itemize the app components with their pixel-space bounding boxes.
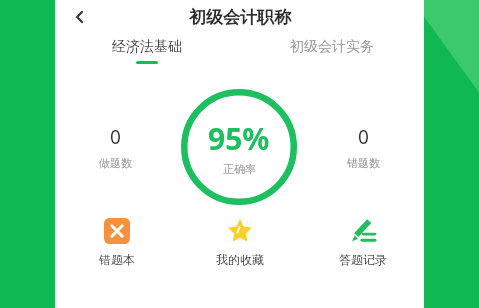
staticText: 答题记录 bbox=[339, 252, 387, 267]
button[interactable]: 初级会计实务 bbox=[239, 38, 424, 72]
staticText: 经济法基础 bbox=[112, 38, 182, 56]
staticText: 我的收藏 bbox=[216, 252, 264, 267]
staticText: 0 bbox=[110, 124, 121, 150]
button[interactable]: Back bbox=[63, 0, 97, 34]
button[interactable]: 答题记录 bbox=[301, 218, 424, 288]
staticText: 0 bbox=[358, 124, 369, 150]
staticText: 做题数 bbox=[99, 156, 132, 170]
staticText: 错题本 bbox=[99, 252, 135, 267]
button[interactable]: 0 bbox=[303, 124, 424, 170]
button[interactable]: 经济法基础 bbox=[55, 38, 239, 72]
button[interactable]: 0 bbox=[55, 124, 175, 170]
staticText: 初级会计职称 bbox=[189, 7, 291, 28]
staticText: 正确率 bbox=[223, 162, 256, 176]
button[interactable]: 我的收藏 bbox=[178, 218, 301, 288]
staticText: 错题数 bbox=[347, 156, 380, 170]
staticText: 初级会计实务 bbox=[290, 38, 374, 56]
button[interactable]: 错题本 bbox=[55, 218, 178, 288]
staticText: 95% bbox=[208, 118, 270, 159]
